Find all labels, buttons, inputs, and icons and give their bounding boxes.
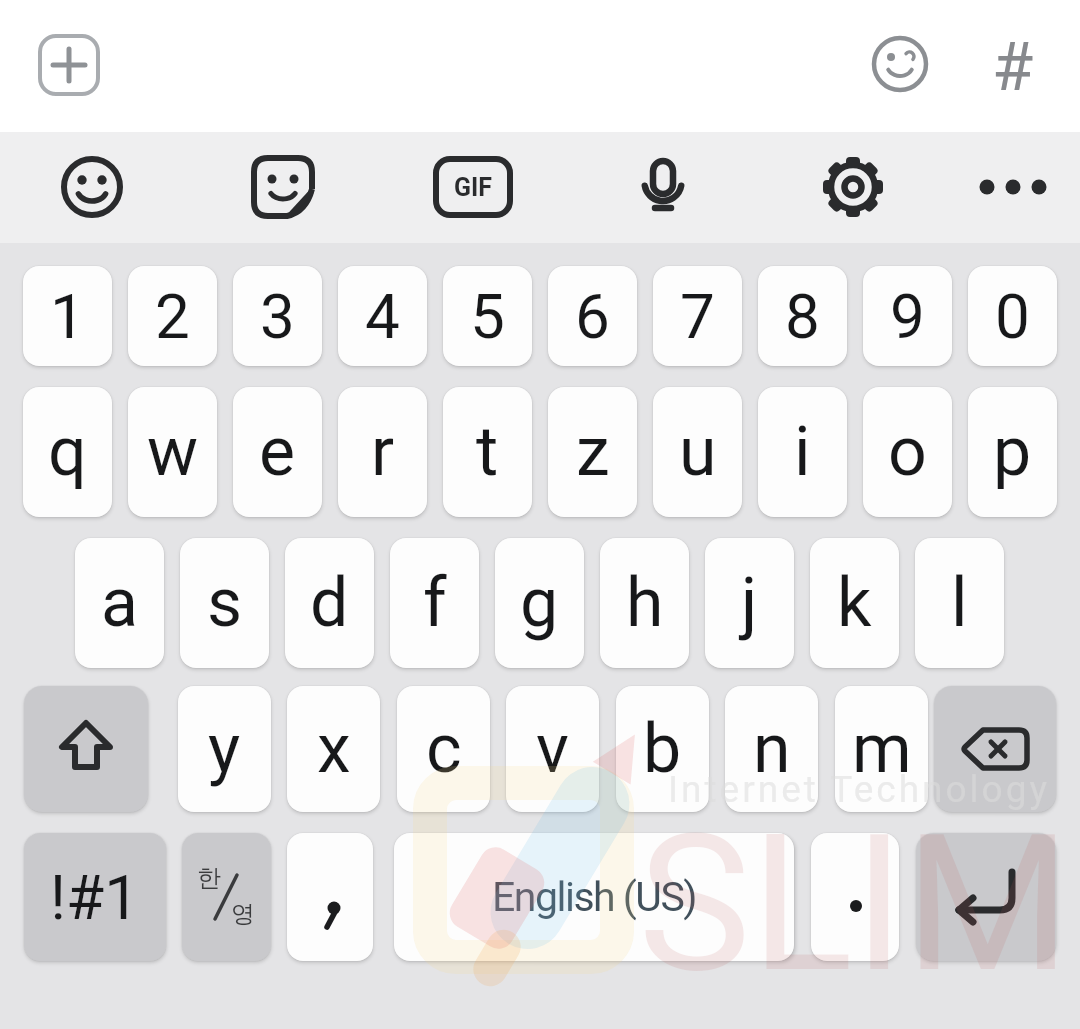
staticText: p [993,412,1032,492]
button[interactable]: v [506,686,599,812]
staticText: t [476,412,499,492]
button[interactable]: 5 [443,266,532,366]
button[interactable]: 1 [23,266,112,366]
staticText: 1 [50,280,85,353]
button[interactable] [287,833,373,961]
button[interactable]: p [968,387,1057,517]
button[interactable] [811,145,895,229]
button[interactable]: m [835,686,928,812]
button[interactable]: h [600,538,689,668]
button[interactable]: o [863,387,952,517]
staticText: i [794,412,811,492]
staticText: !#1 [50,861,140,934]
button[interactable]: 0 [968,266,1057,366]
button[interactable] [934,686,1056,812]
button[interactable]: f [390,538,479,668]
button[interactable]: 3 [233,266,322,366]
staticText: x [317,709,351,789]
button[interactable]: j [705,538,794,668]
button[interactable]: t [443,387,532,517]
button[interactable]: !#1 [24,833,166,961]
staticText: 영 [231,899,255,929]
button[interactable] [916,833,1056,961]
staticText: e [259,412,296,492]
staticText: 8 [785,280,820,353]
staticText: g [520,563,559,643]
staticText: a [101,563,138,643]
button[interactable]: l [915,538,1004,668]
button[interactable]: n [725,686,818,812]
button[interactable]: g [495,538,584,668]
button[interactable]: q [23,387,112,517]
button[interactable]: e [233,387,322,517]
staticText: w [147,412,199,492]
button[interactable]: z [548,387,637,517]
staticText: d [310,563,349,643]
staticText: f [423,563,447,643]
button[interactable]: x [287,686,380,812]
button[interactable]: c [397,686,490,812]
staticText: c [426,709,462,789]
button[interactable]: d [285,538,374,668]
staticText: r [371,412,395,492]
staticText: y [208,709,241,789]
staticText: GIF [454,173,493,202]
staticText: 9 [890,280,925,353]
button[interactable]: b [616,686,709,812]
staticText: # [992,28,1034,100]
button[interactable] [38,34,100,96]
button[interactable]: English (US) [394,833,794,961]
button[interactable]: k [810,538,899,668]
staticText: l [951,563,968,643]
staticText: s [207,563,243,643]
button[interactable]: 2 [128,266,217,366]
staticText: n [753,709,791,789]
button[interactable] [621,145,705,229]
button[interactable] [870,34,930,94]
staticText: z [576,412,610,492]
button[interactable]: 9 [863,266,952,366]
staticText: o [888,412,927,492]
staticText: SLIM [638,793,1071,1016]
button[interactable]: s [180,538,269,668]
button[interactable]: w [128,387,217,517]
button[interactable]: GIF [431,145,515,229]
staticText: u [679,412,717,492]
button[interactable] [971,145,1055,229]
button[interactable] [50,145,134,229]
button[interactable]: # [982,28,1044,100]
staticText: 7 [680,280,715,353]
staticText: m [852,709,912,789]
button[interactable]: a [75,538,164,668]
staticText: 6 [575,280,610,353]
button[interactable]: 한 [182,833,271,961]
staticText: 0 [995,280,1030,353]
staticText: 한 [197,863,221,893]
button[interactable] [811,833,899,961]
button[interactable] [24,686,148,812]
button[interactable]: i [758,387,847,517]
button[interactable] [241,145,325,229]
staticText: k [837,563,872,643]
button[interactable]: 7 [653,266,742,366]
button[interactable]: y [178,686,271,812]
staticText: English (US) [492,873,697,921]
staticText: 2 [155,280,190,353]
staticText: b [643,709,682,789]
button[interactable]: u [653,387,742,517]
staticText: 4 [365,280,400,353]
button[interactable]: 6 [548,266,637,366]
staticText: Internet Technology [668,768,1050,811]
staticText: 3 [260,280,295,353]
staticText: j [741,563,758,643]
staticText: 5 [470,280,505,353]
button[interactable]: 4 [338,266,427,366]
staticText: h [626,563,664,643]
button[interactable]: r [338,387,427,517]
staticText: v [536,709,569,789]
button[interactable]: 8 [758,266,847,366]
staticText: q [48,412,87,492]
